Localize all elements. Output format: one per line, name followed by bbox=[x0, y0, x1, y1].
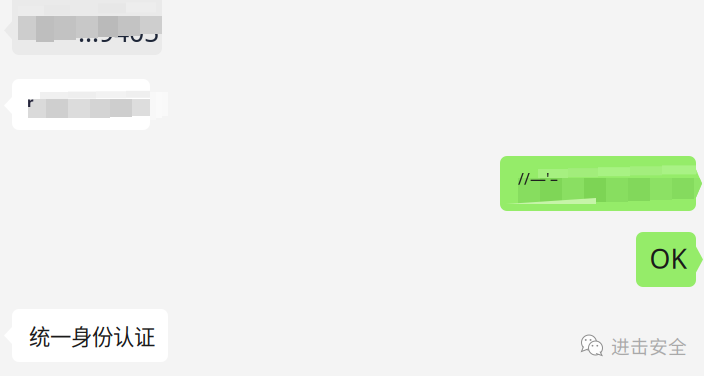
staticText: 统一身份认证 bbox=[29, 320, 155, 351]
button[interactable]: …9405 bbox=[4, 0, 162, 55]
button[interactable]: //—'– bbox=[500, 156, 702, 211]
staticText: 进击安全 bbox=[611, 332, 687, 359]
staticText: //—'– bbox=[518, 168, 558, 189]
button[interactable]: r bbox=[4, 79, 150, 130]
staticText: r bbox=[27, 92, 34, 111]
button[interactable]: 统一身份认证 bbox=[4, 309, 168, 362]
staticText: …9405 bbox=[78, 14, 159, 49]
staticText: OK bbox=[649, 241, 687, 276]
button[interactable]: OK bbox=[636, 232, 703, 287]
